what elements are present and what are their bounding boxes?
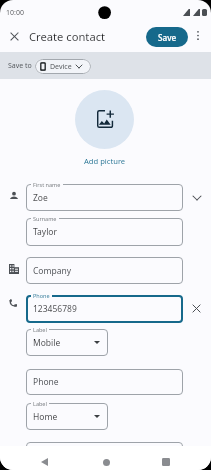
staticText: First name bbox=[33, 181, 61, 188]
staticText: Phone bbox=[33, 292, 50, 299]
button[interactable]: Back bbox=[33, 451, 55, 470]
button[interactable]: Clear phone number bbox=[189, 301, 204, 316]
button[interactable]: More options bbox=[191, 28, 205, 42]
staticText: 123456789 bbox=[33, 303, 77, 315]
staticText: Save bbox=[158, 32, 177, 43]
button[interactable]: Expand name fields bbox=[189, 190, 204, 205]
staticText: Surname bbox=[33, 215, 57, 222]
staticText: Label bbox=[33, 400, 47, 407]
staticText: Taylor bbox=[33, 226, 57, 238]
staticText: Company bbox=[33, 265, 72, 277]
staticText: Label bbox=[33, 326, 47, 333]
button[interactable]: Recent apps bbox=[155, 451, 177, 470]
button[interactable] bbox=[26, 295, 183, 323]
staticText: Home bbox=[33, 411, 58, 423]
button[interactable]: Device bbox=[35, 59, 91, 74]
button[interactable]: Save bbox=[146, 27, 188, 47]
staticText: 10:00 bbox=[6, 8, 24, 18]
button[interactable]: Close bbox=[6, 28, 22, 44]
button[interactable]: Home bbox=[95, 451, 117, 470]
staticText: Device bbox=[50, 62, 72, 72]
button[interactable] bbox=[26, 329, 108, 356]
button[interactable] bbox=[26, 442, 183, 468]
staticText: Save to bbox=[8, 61, 32, 71]
staticText: Phone bbox=[33, 376, 59, 388]
button[interactable] bbox=[26, 184, 183, 211]
staticText: Add picture bbox=[84, 156, 126, 166]
staticText: Mobile bbox=[33, 337, 61, 349]
button[interactable] bbox=[26, 403, 108, 430]
staticText: Create contact bbox=[29, 29, 106, 44]
button[interactable]: Add picture bbox=[75, 90, 134, 149]
staticText: Zoe bbox=[33, 192, 48, 204]
button[interactable] bbox=[26, 218, 183, 246]
button[interactable] bbox=[26, 257, 183, 284]
button[interactable] bbox=[26, 369, 183, 395]
